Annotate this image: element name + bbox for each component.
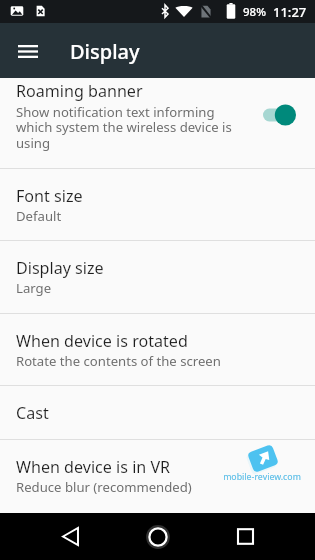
staticText: Default xyxy=(16,207,62,225)
button[interactable]: Roaming banner toggle xyxy=(263,100,296,130)
staticText: Cast xyxy=(16,402,49,424)
button[interactable]: When device is rotated xyxy=(0,314,315,385)
button[interactable]: Open navigation menu xyxy=(8,31,48,71)
button[interactable]: Cast xyxy=(0,386,315,439)
staticText: mobile-review.com xyxy=(223,471,301,483)
button[interactable]: When device is in VR xyxy=(0,440,315,512)
button[interactable]: Font size xyxy=(0,169,315,240)
staticText: 11:27 xyxy=(273,3,307,21)
staticText: Display xyxy=(70,38,140,65)
staticText: 98% xyxy=(243,4,266,20)
staticText: Roaming banner xyxy=(16,80,143,102)
button[interactable]: Roaming banner xyxy=(0,78,315,168)
button[interactable]: Back xyxy=(44,513,96,560)
button[interactable]: Recent apps xyxy=(219,513,271,560)
staticText: Large xyxy=(16,279,52,297)
staticText: Rotate the contents of the screen xyxy=(16,352,221,370)
staticText: When device is rotated xyxy=(16,330,188,352)
staticText: Show notification text informing which s… xyxy=(16,103,238,152)
button[interactable]: Display size xyxy=(0,241,315,313)
staticText: Font size xyxy=(16,185,83,207)
button[interactable]: Home xyxy=(132,513,184,560)
staticText: When device is in VR xyxy=(16,456,171,478)
staticText: Reduce blur (recommended) xyxy=(16,478,192,496)
staticText: Display size xyxy=(16,257,104,279)
